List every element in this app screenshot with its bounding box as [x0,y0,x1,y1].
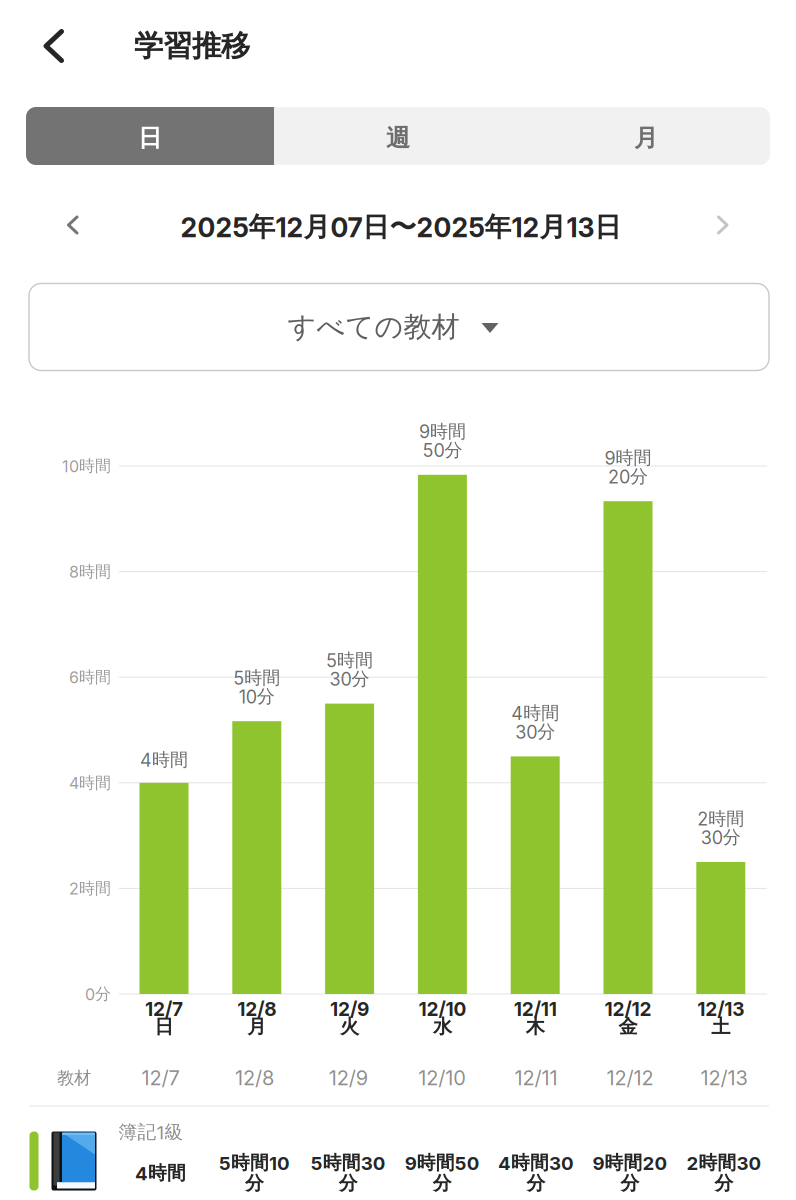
staticText: 4時間 [140,748,188,771]
staticText: 4時間 [69,773,111,793]
staticText: 12/7 [141,1066,179,1090]
staticText: 土 [711,1014,730,1038]
staticText: 5時間 [326,649,373,672]
staticText: 4時間30 [498,1151,574,1174]
staticText: 9時間 [419,420,466,443]
staticText: 12/10 [418,997,466,1021]
staticText: 50分 [422,439,462,461]
staticText: 12/10 [418,1066,466,1090]
staticText: 5時間 [233,666,280,689]
staticText: 2時間30 [686,1151,761,1174]
staticText: 5時間10 [219,1151,290,1174]
button[interactable]: すべての教材 [29,283,769,370]
staticText: 12/11 [514,997,557,1021]
staticText: 8時間 [69,561,111,582]
staticText: 10分 [239,685,275,708]
staticText: 分 [527,1171,546,1195]
staticText: 分 [433,1171,452,1195]
staticText: 2時間 [69,878,111,898]
staticText: 6時間 [69,667,111,687]
button[interactable]: Back [22,14,86,78]
staticText: 4時間 [135,1161,186,1185]
staticText: 9時間50 [405,1151,480,1174]
staticText: 日 [154,1014,173,1038]
staticText: 20分 [608,465,648,488]
staticText: 12/13 [697,997,744,1021]
staticText: 12/9 [329,1066,368,1090]
staticText: すべての教材 [287,309,459,345]
staticText: 12/8 [237,997,276,1021]
staticText: 月 [634,123,658,153]
button[interactable]: 月 [522,107,770,165]
staticText: 12/12 [604,997,651,1021]
staticText: 9時間 [604,446,651,469]
staticText: 12/12 [606,1066,653,1090]
staticText: 分 [714,1171,733,1195]
staticText: 木 [526,1014,545,1038]
staticText: 分 [339,1171,358,1195]
button[interactable]: 週 [274,107,522,165]
staticText: 4時間 [511,702,559,724]
staticText: 12/9 [330,997,369,1021]
staticText: 12/8 [235,1066,274,1090]
staticText: 分 [245,1171,264,1195]
button[interactable]: Next week [695,200,751,250]
staticText: 日 [138,123,162,153]
staticText: 簿記1級 [118,1120,183,1144]
staticText: 30分 [701,826,741,849]
staticText: 5時間30 [311,1151,386,1174]
staticText: 火 [340,1014,359,1038]
staticText: 週 [386,123,410,153]
staticText: 30分 [515,720,555,743]
staticText: 分 [620,1171,639,1195]
staticText: 2時間 [697,807,744,830]
button[interactable]: 日 [26,107,274,165]
staticText: 月 [247,1014,266,1038]
staticText: 0分 [85,984,111,1004]
staticText: 学習推移 [134,27,250,64]
button[interactable]: Previous week [45,200,101,250]
staticText: 水 [433,1014,452,1038]
staticText: 2025年12月07日〜2025年12月13日 [180,210,621,244]
staticText: 12/13 [700,1066,747,1090]
staticText: 金 [618,1014,637,1038]
staticText: 9時間20 [592,1151,667,1174]
staticText: 30分 [330,668,370,690]
staticText: 10時間 [62,456,111,476]
staticText: 12/11 [515,1066,558,1090]
staticText: 12/7 [145,997,183,1021]
staticText: 教材 [57,1067,91,1089]
